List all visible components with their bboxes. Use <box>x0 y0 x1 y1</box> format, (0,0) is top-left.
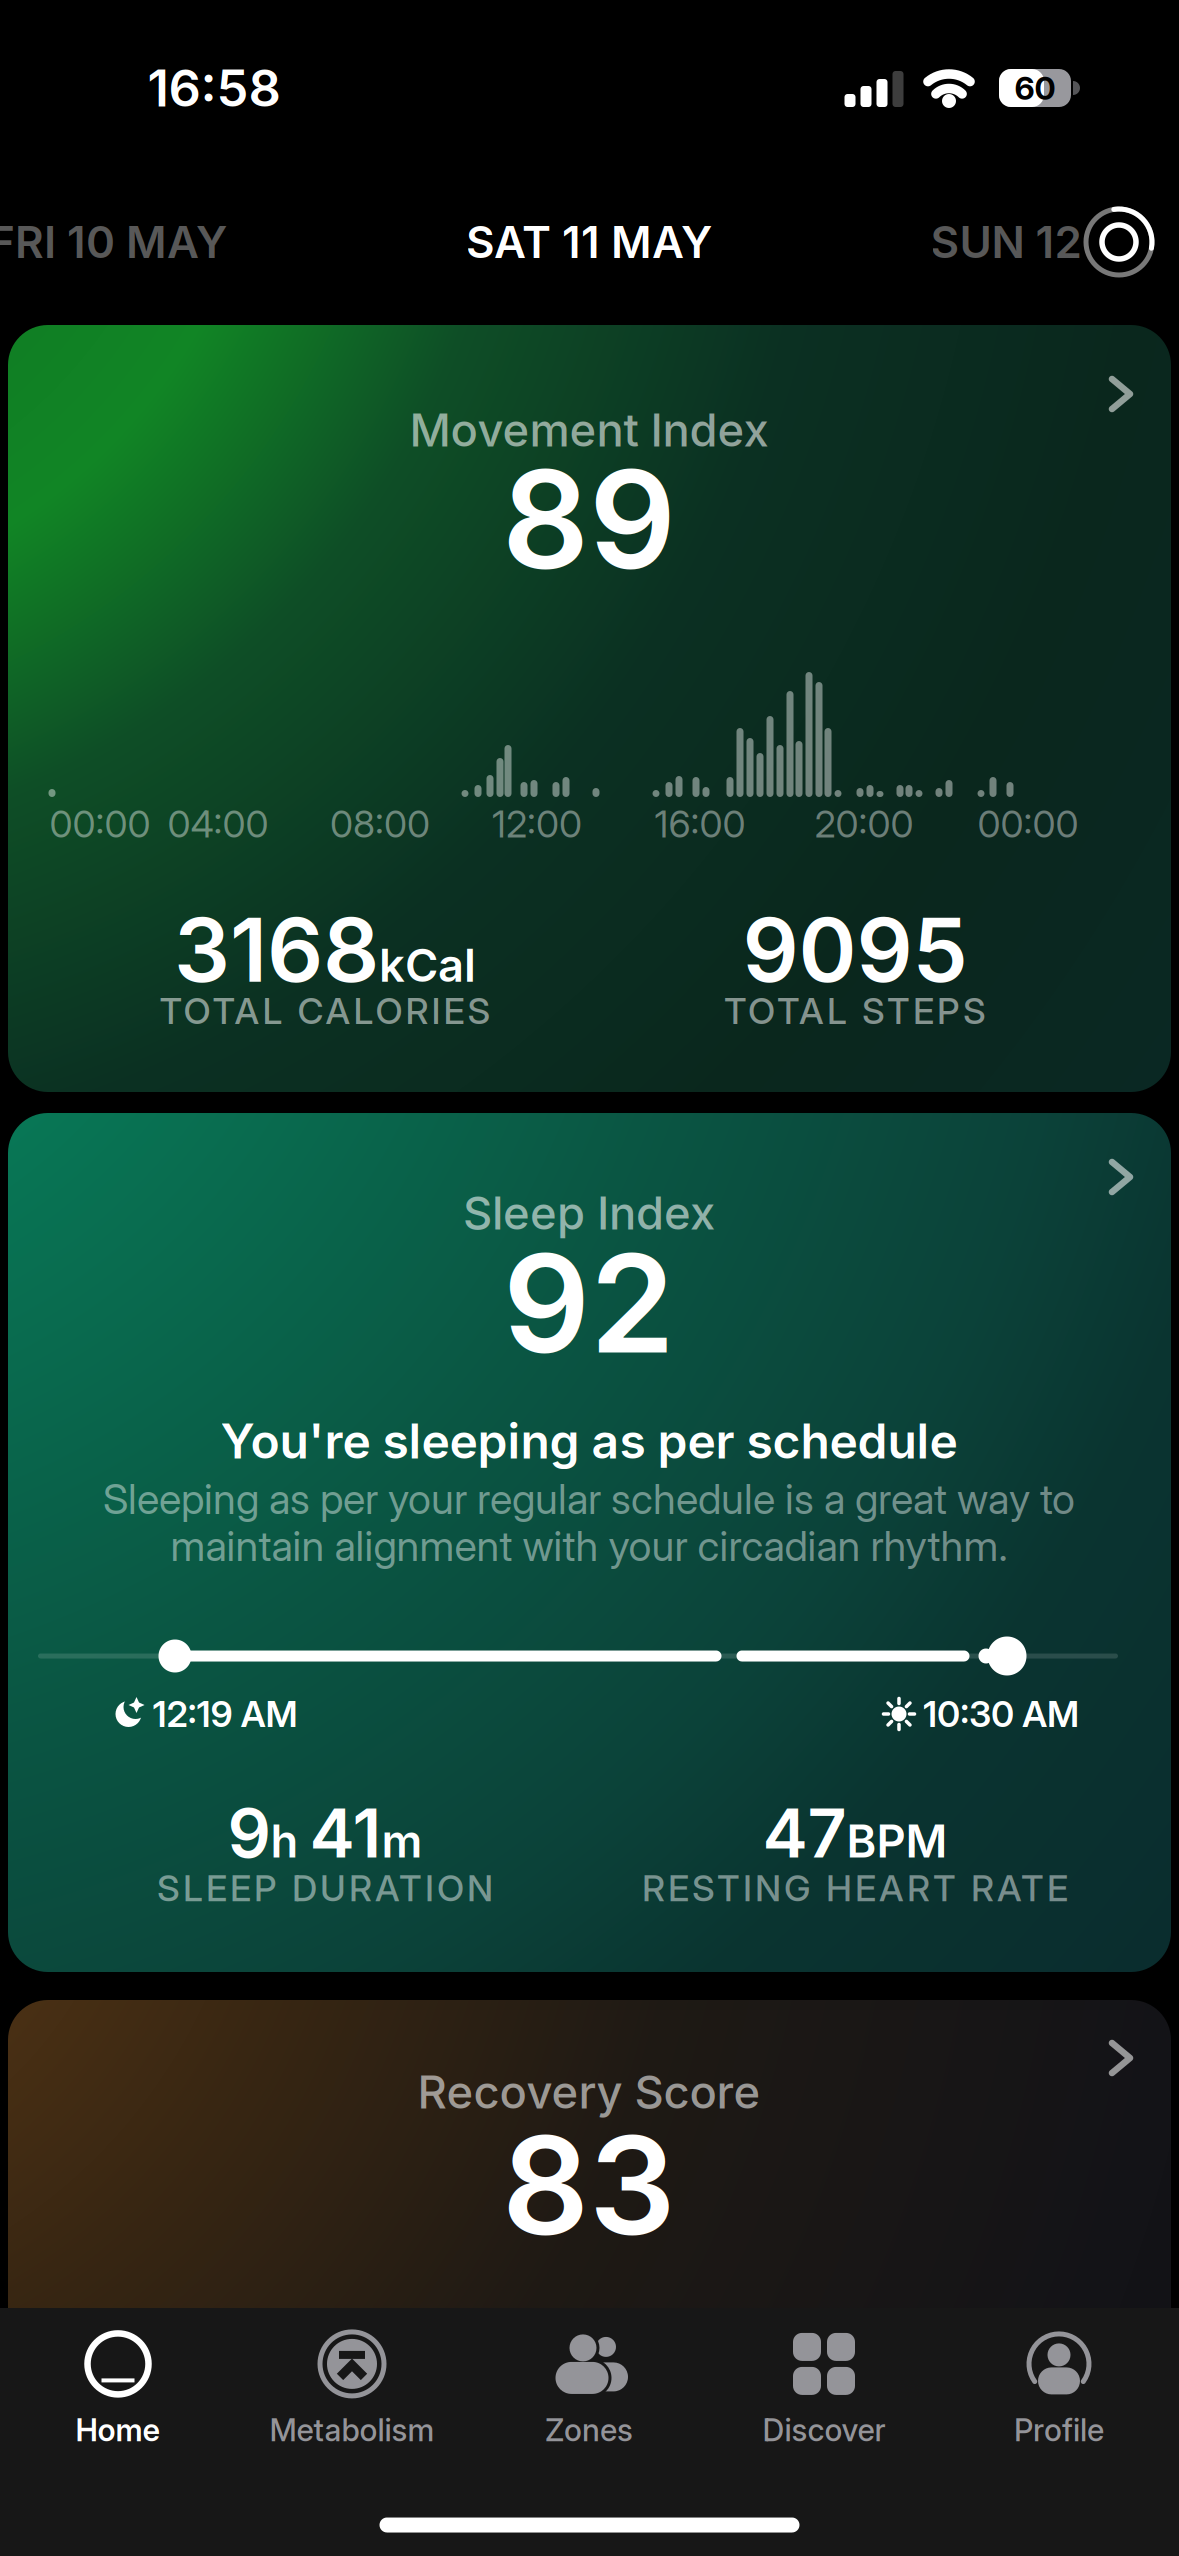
staticText: 9h 41m <box>227 1793 422 1873</box>
button[interactable]: FRI 10 MAY <box>0 216 227 268</box>
staticText: 89 <box>502 439 676 599</box>
staticText: RESTING HEART RATE <box>642 1867 1068 1909</box>
staticText: 47BPM <box>762 1793 947 1873</box>
staticText: 20:00 <box>814 802 913 846</box>
staticText: 04:00 <box>167 802 268 846</box>
button[interactable]: Movement Index <box>8 325 1171 1092</box>
button[interactable]: SUN 12 MAY <box>930 216 1179 268</box>
staticText: Sleeping as per your regular schedule is… <box>103 1475 1075 1523</box>
staticText: 3168kCal <box>174 898 476 1002</box>
staticText: Movement Index <box>409 403 768 457</box>
button[interactable]: Metabolism <box>235 2312 469 2462</box>
staticText: 00:00 <box>977 802 1078 846</box>
staticText: SUN 12 MAY <box>930 216 1179 268</box>
staticText: Zones <box>545 2412 633 2448</box>
staticText: Recovery Score <box>417 2065 760 2119</box>
staticText: 00:00 <box>49 802 150 846</box>
button[interactable]: Discover <box>707 2312 941 2462</box>
button[interactable]: Home <box>1 2312 235 2462</box>
staticText: FRI 10 MAY <box>0 216 227 268</box>
staticText: 16:00 <box>654 802 745 846</box>
staticText: 10:30 AM <box>923 1693 1079 1735</box>
staticText: TOTAL STEPS <box>724 990 986 1032</box>
staticText: 9095 <box>742 898 967 1002</box>
staticText: 60 <box>1014 69 1055 107</box>
staticText: 92 <box>503 1223 675 1383</box>
staticText: Discover <box>762 2412 885 2448</box>
staticText: maintain alignment with your circadian r… <box>170 1522 1007 1570</box>
staticText: 83 <box>502 2105 676 2265</box>
staticText: SAT 11 MAY <box>466 216 712 268</box>
button[interactable]: Profile <box>942 2312 1176 2462</box>
staticText: SLEEP DURATION <box>157 1867 493 1909</box>
staticText: Home <box>75 2412 160 2448</box>
button[interactable]: Sleep Index <box>8 1113 1171 1972</box>
staticText: Profile <box>1014 2412 1104 2448</box>
staticText: TOTAL CALORIES <box>159 990 490 1032</box>
staticText: 12:19 AM <box>152 1693 297 1735</box>
staticText: 08:00 <box>330 802 430 846</box>
staticText: 16:58 <box>147 58 280 118</box>
button[interactable] <box>1079 202 1159 282</box>
button[interactable]: Zones <box>472 2312 706 2462</box>
button[interactable]: Recovery Score <box>8 2000 1171 2556</box>
staticText: Metabolism <box>269 2412 434 2448</box>
staticText: You're sleeping as per schedule <box>220 1413 957 1469</box>
staticText: Sleep Index <box>463 1186 715 1240</box>
staticText: 12:00 <box>492 802 582 846</box>
